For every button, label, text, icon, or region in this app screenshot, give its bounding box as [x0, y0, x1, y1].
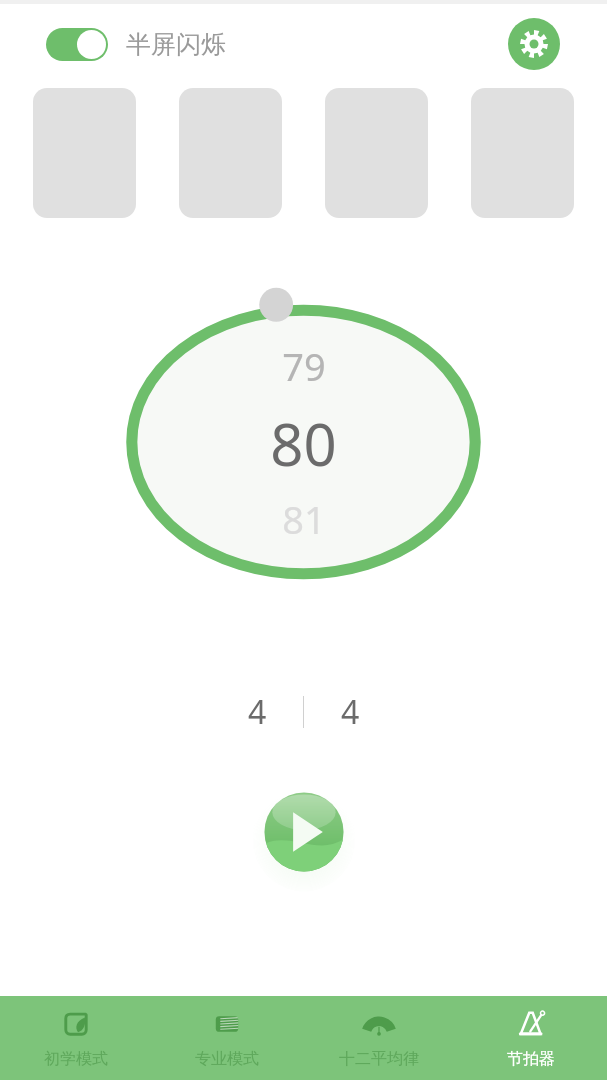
staticText: 80: [270, 404, 337, 483]
button[interactable]: [325, 88, 428, 218]
button[interactable]: [179, 88, 282, 218]
button[interactable]: 十二平均律: [303, 996, 455, 1080]
button[interactable]: 半屏闪烁: [46, 28, 226, 61]
button[interactable]: [471, 88, 574, 218]
staticText: 专业模式: [195, 1049, 259, 1069]
button[interactable]: Play: [258, 786, 350, 878]
staticText: 节拍器: [507, 1049, 555, 1069]
staticText: 十二平均律: [339, 1049, 419, 1069]
button[interactable]: 节拍器: [455, 996, 607, 1080]
staticText: 4: [341, 690, 360, 734]
button[interactable]: 4: [211, 684, 303, 740]
staticText: 79: [282, 340, 326, 392]
button[interactable]: Settings: [508, 18, 560, 70]
staticText: 4: [248, 690, 267, 734]
button[interactable]: Tempo dial: [0, 296, 607, 588]
button[interactable]: 专业模式: [151, 996, 303, 1080]
button[interactable]: 初学模式: [0, 996, 151, 1080]
staticText: 半屏闪烁: [126, 29, 226, 60]
button[interactable]: [33, 88, 136, 218]
staticText: 81: [282, 493, 326, 545]
staticText: 初学模式: [44, 1049, 108, 1069]
button[interactable]: 4: [304, 684, 396, 740]
